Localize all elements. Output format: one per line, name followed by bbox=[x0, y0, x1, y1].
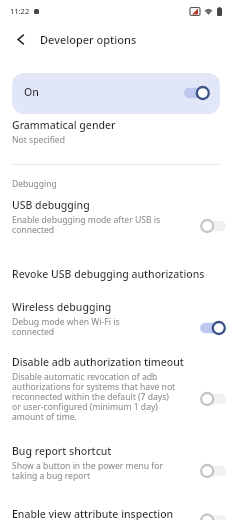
button[interactable]: Wireless debugging bbox=[0, 300, 232, 337]
staticText: Grammatical gender bbox=[12, 118, 116, 132]
button[interactable]: On bbox=[12, 73, 220, 114]
staticText: Disable automatic revocation of adb auth… bbox=[12, 371, 176, 422]
button[interactable]: Revoke USB debugging authorizations bbox=[0, 267, 232, 281]
staticText: Developer options bbox=[40, 32, 137, 47]
staticText: Debug mode when Wi-Fi is connected bbox=[12, 316, 120, 337]
button[interactable]: Bug report shortcut bbox=[0, 444, 232, 481]
button[interactable]: USB debugging bbox=[0, 198, 232, 235]
staticText: Enable debugging mode after USB is conne… bbox=[12, 214, 161, 235]
button[interactable] bbox=[12, 30, 30, 48]
button[interactable]: Disable adb authorization timeout bbox=[0, 355, 232, 422]
staticText: Enable view attribute inspection bbox=[12, 507, 174, 520]
button[interactable]: Enable view attribute inspection bbox=[0, 507, 232, 520]
staticText: Debugging bbox=[12, 178, 57, 190]
staticText: Show a button in the power menu for taki… bbox=[12, 460, 164, 481]
button[interactable]: Grammatical gender bbox=[0, 118, 232, 146]
staticText: 11:22 bbox=[10, 6, 30, 16]
staticText: USB debugging bbox=[12, 198, 90, 212]
staticText: Revoke USB debugging authorizations bbox=[12, 267, 205, 281]
staticText: Not specified bbox=[12, 134, 65, 146]
staticText: On bbox=[24, 85, 39, 99]
staticText: Bug report shortcut bbox=[12, 444, 112, 458]
staticText: Disable adb authorization timeout bbox=[12, 355, 184, 369]
staticText: Wireless debugging bbox=[12, 300, 112, 314]
